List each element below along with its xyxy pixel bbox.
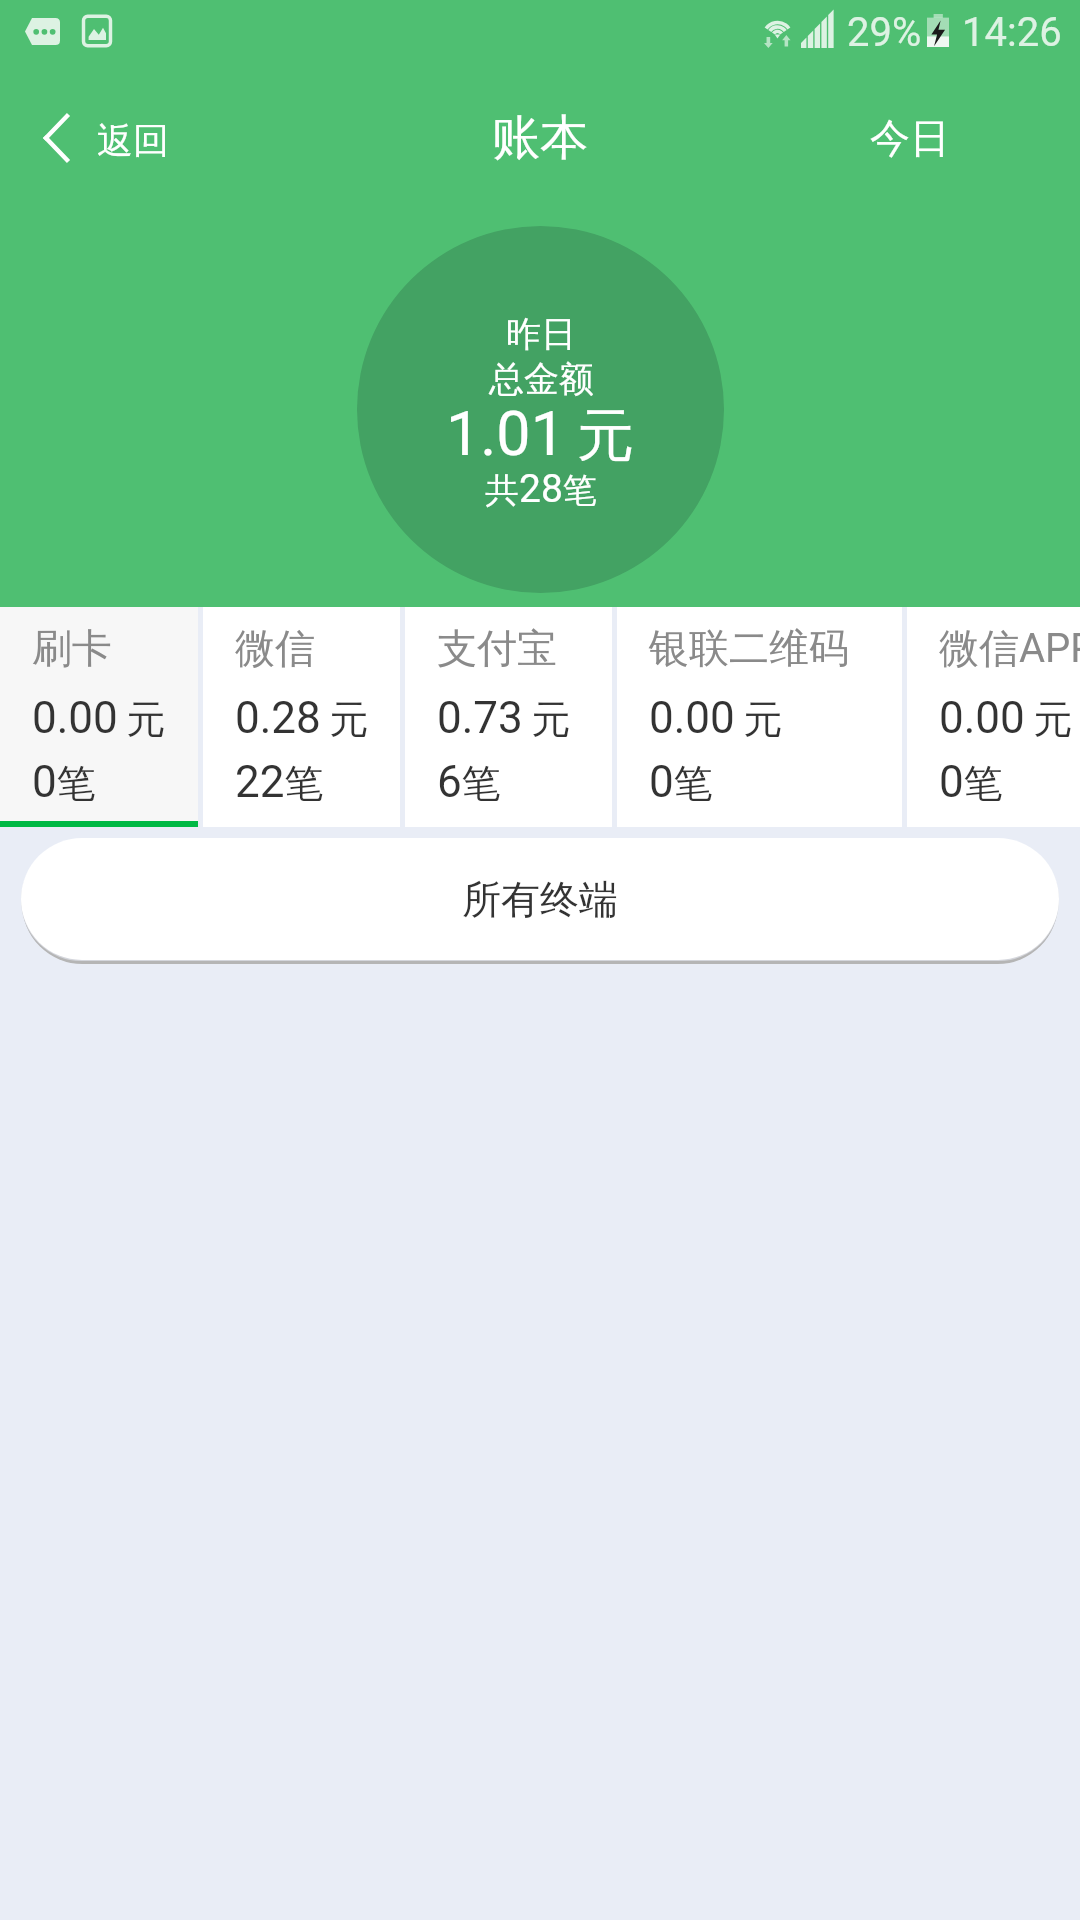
staticText: 昨日 [506,312,576,356]
other: Back [46,116,67,160]
staticText: 0.28 元 [235,692,369,744]
staticText: 总金额 [489,357,594,401]
staticText: 0.00 元 [939,692,1073,744]
staticText: 微信 [235,623,315,673]
staticText: 0笔 [32,756,96,808]
staticText: 1.01 元 [446,398,635,472]
button[interactable]: 微信 [203,607,400,827]
button[interactable]: 银联二维码 [617,607,902,827]
button[interactable]: 支付宝 [405,607,612,827]
staticText: 返回 [97,118,169,163]
staticText: 今日 [870,113,950,163]
staticText: 0.73 元 [437,692,571,744]
staticText: 微信APP [939,623,1080,673]
staticText: 22笔 [235,756,324,808]
staticText: 银联二维码 [649,623,849,673]
button[interactable]: 刷卡 [0,607,198,827]
staticText: 29% [847,9,922,56]
staticText: 账本 [492,108,588,168]
staticText: 0.00 元 [649,692,783,744]
button[interactable]: 所有终端 [21,838,1059,960]
staticText: 支付宝 [437,623,557,673]
staticText: 0笔 [939,756,1003,808]
staticText: 0笔 [649,756,713,808]
staticText: 刷卡 [32,623,112,673]
staticText: 14:26 [962,9,1062,56]
staticText: 共28笔 [485,466,597,512]
staticText: 6笔 [437,756,501,808]
staticText: 0.00 元 [32,692,166,744]
button[interactable]: 微信APP [907,607,1080,827]
button[interactable]: Back [42,90,169,190]
button[interactable]: 今日 [857,88,962,188]
staticText: 所有终端 [462,875,618,924]
